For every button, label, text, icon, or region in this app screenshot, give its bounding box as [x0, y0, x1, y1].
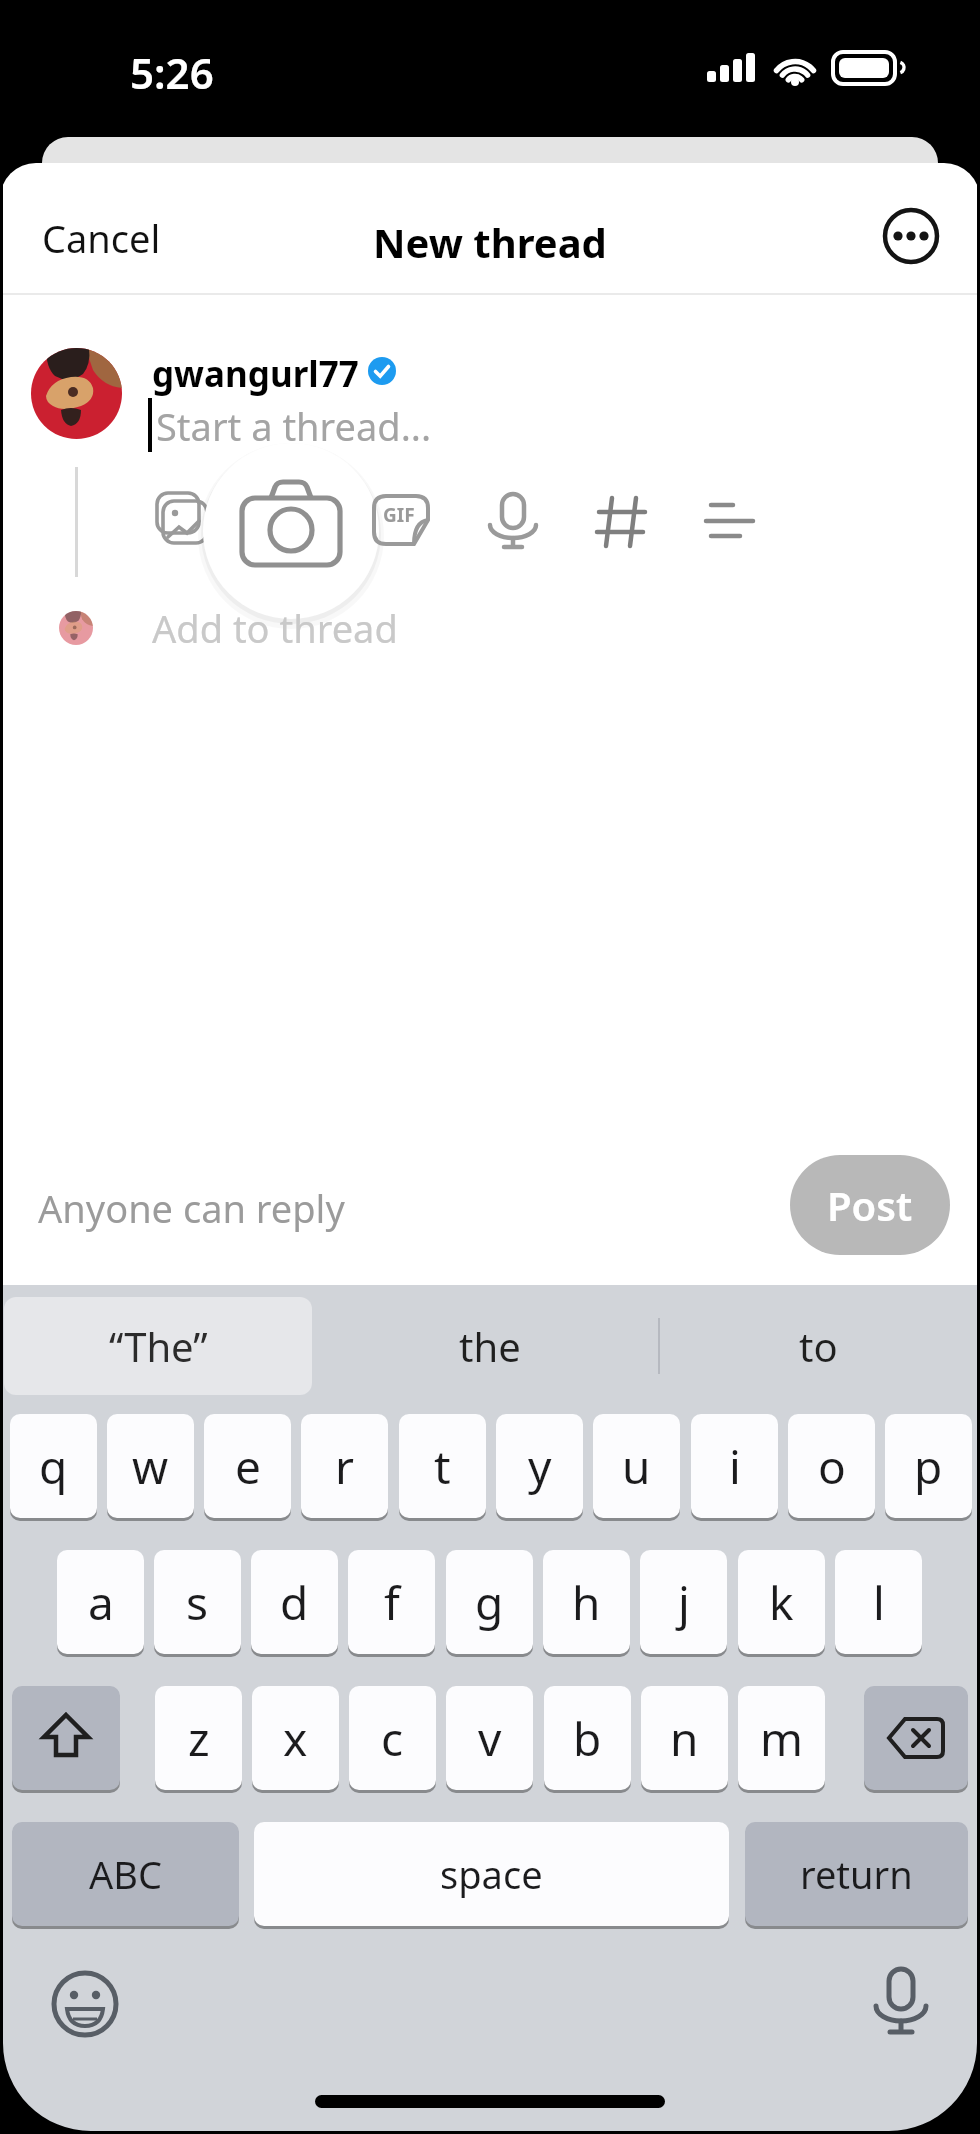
button[interactable]: g [446, 1550, 533, 1654]
button[interactable] [239, 478, 343, 570]
staticText: “The” [109, 1319, 208, 1373]
button[interactable] [596, 494, 648, 550]
staticText: gwangurl77 [152, 350, 359, 398]
button[interactable]: GIF [370, 492, 432, 552]
staticText: v [478, 1707, 502, 1770]
button[interactable]: ABC [12, 1822, 239, 1926]
button[interactable] [12, 1686, 120, 1790]
staticText: ABC [89, 1848, 162, 1900]
staticText: c [381, 1707, 404, 1770]
staticText: p [914, 1435, 943, 1498]
button[interactable]: v [446, 1686, 533, 1790]
button[interactable]: m [738, 1686, 825, 1790]
button[interactable]: o [788, 1414, 875, 1518]
button[interactable]: x [252, 1686, 339, 1790]
staticText: o [818, 1435, 846, 1498]
staticText: z [188, 1707, 210, 1770]
staticText: r [335, 1435, 354, 1498]
button[interactable]: Start a thread... [146, 400, 706, 456]
staticText: y [528, 1435, 552, 1498]
button[interactable]: n [641, 1686, 728, 1790]
button[interactable]: q [10, 1414, 97, 1518]
staticText: g [475, 1571, 504, 1634]
button[interactable]: h [543, 1550, 630, 1654]
staticText: Anyone can reply [38, 1182, 345, 1234]
staticText: h [572, 1571, 601, 1634]
button[interactable]: “The” [4, 1297, 312, 1395]
button[interactable]: k [738, 1550, 825, 1654]
button[interactable]: e [204, 1414, 291, 1518]
staticText: b [573, 1707, 602, 1770]
staticText: New thread [0, 215, 980, 269]
button[interactable]: r [301, 1414, 388, 1518]
button[interactable]: Post [790, 1155, 950, 1255]
staticText: GIF [383, 502, 415, 528]
staticText: q [39, 1435, 68, 1498]
button[interactable] [150, 488, 214, 552]
staticText: return [800, 1848, 913, 1900]
button[interactable]: Cancel [20, 195, 200, 281]
staticText: d [280, 1571, 309, 1634]
button[interactable]: y [496, 1414, 583, 1518]
staticText: l [873, 1571, 885, 1634]
button[interactable]: s [154, 1550, 241, 1654]
button[interactable]: w [107, 1414, 194, 1518]
button[interactable] [484, 490, 540, 554]
staticText: e [235, 1435, 261, 1498]
staticText: x [283, 1707, 308, 1770]
staticText: space [440, 1848, 543, 1900]
staticText: k [769, 1571, 794, 1634]
staticText: t [434, 1435, 451, 1498]
button[interactable]: p [885, 1414, 972, 1518]
staticText: s [186, 1571, 209, 1634]
button[interactable]: to [660, 1297, 976, 1395]
button[interactable] [49, 1969, 121, 2041]
button[interactable] [864, 1686, 968, 1790]
button[interactable] [702, 496, 758, 544]
staticText: w [132, 1435, 169, 1498]
staticText: m [760, 1707, 804, 1770]
button[interactable]: return [745, 1822, 968, 1926]
button[interactable]: c [349, 1686, 436, 1790]
button[interactable]: u [593, 1414, 680, 1518]
staticText: a [88, 1571, 114, 1634]
staticText: u [622, 1435, 651, 1498]
button[interactable] [868, 1965, 934, 2045]
button[interactable]: t [399, 1414, 486, 1518]
staticText: 5:26 [130, 44, 214, 101]
button[interactable]: j [640, 1550, 727, 1654]
staticText: Add to thread [152, 602, 398, 654]
button[interactable]: i [691, 1414, 778, 1518]
button[interactable]: the [330, 1297, 650, 1395]
button[interactable] [878, 203, 944, 269]
staticText: Start a thread... [156, 400, 432, 452]
button[interactable]: z [155, 1686, 242, 1790]
button[interactable]: b [544, 1686, 631, 1790]
staticText: to [799, 1319, 838, 1373]
staticText: n [670, 1707, 699, 1770]
staticText: f [384, 1571, 400, 1634]
staticText: the [459, 1319, 521, 1373]
staticText: i [729, 1435, 741, 1498]
button[interactable]: a [57, 1550, 144, 1654]
button[interactable]: l [835, 1550, 922, 1654]
button[interactable]: space [254, 1822, 729, 1926]
button[interactable]: Add to thread [140, 600, 480, 656]
staticText: j [678, 1571, 690, 1634]
staticText: Cancel [42, 212, 161, 264]
button[interactable]: d [251, 1550, 338, 1654]
staticText: Post [827, 1178, 913, 1232]
button[interactable]: f [348, 1550, 435, 1654]
